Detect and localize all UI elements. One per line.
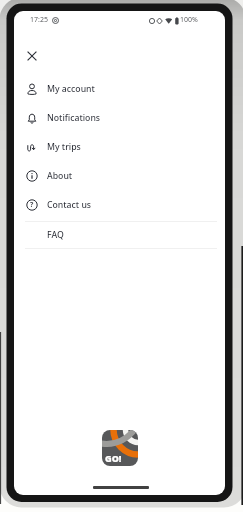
button[interactable] xyxy=(24,48,40,64)
staticText: ? xyxy=(30,200,34,210)
button[interactable]: About xyxy=(14,163,225,189)
staticText: Notifications xyxy=(47,112,101,124)
staticText: 17:25 xyxy=(30,15,48,25)
staticText: FAQ xyxy=(47,229,64,241)
button[interactable]: My account xyxy=(14,76,225,102)
staticText: Contact us xyxy=(47,199,92,211)
button[interactable]: FAQ xyxy=(14,224,225,246)
staticText: 100% xyxy=(180,15,198,25)
button[interactable]: My trips xyxy=(14,134,225,160)
button[interactable]: Notifications xyxy=(14,105,225,131)
staticText: About xyxy=(47,170,73,182)
staticText: My trips xyxy=(47,141,81,153)
button[interactable]: GO! xyxy=(102,430,138,466)
staticText: GO! xyxy=(105,452,122,464)
button[interactable]: ? xyxy=(14,192,225,218)
staticText: My account xyxy=(47,83,95,95)
